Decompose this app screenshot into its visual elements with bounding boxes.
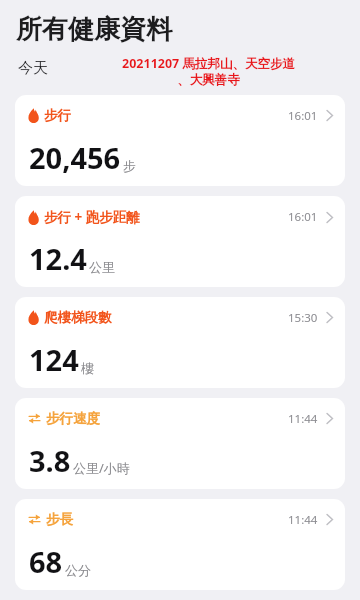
staticText: 今天 (18, 59, 48, 78)
staticText: 20211207 馬拉邦山、天空步道 、大興善寺 (122, 55, 295, 88)
staticText: 16:01 (288, 209, 318, 225)
staticText: 所有健康資料 (16, 13, 172, 46)
button[interactable]: Activity (15, 297, 345, 388)
other: Activity (28, 210, 39, 225)
staticText: 16:01 (288, 108, 318, 124)
button[interactable]: Activity (15, 196, 345, 287)
staticText: 68 (29, 542, 63, 581)
staticText: 11:44 (288, 512, 318, 528)
other: Walking (28, 412, 41, 425)
staticText: 20,456 (29, 138, 121, 177)
other: Open details (326, 109, 333, 122)
button[interactable]: Activity (15, 95, 345, 186)
staticText: 步行 + 跑步距離 (44, 208, 140, 226)
button[interactable]: Walking (15, 398, 345, 489)
other: Walking (28, 513, 41, 526)
staticText: 爬樓梯段數 (44, 309, 112, 326)
staticText: 樓 (81, 360, 94, 376)
staticText: 步 (123, 158, 136, 174)
other: Open details (326, 311, 333, 324)
other: Open details (326, 211, 333, 224)
staticText: 公分 (65, 562, 91, 578)
staticText: 步長 (46, 511, 73, 528)
staticText: 15:30 (288, 310, 318, 326)
staticText: 124 (29, 340, 79, 379)
other: Open details (326, 412, 333, 425)
other: Activity (28, 310, 39, 325)
staticText: 3.8 (29, 441, 71, 480)
button[interactable]: Walking (15, 499, 345, 590)
other: Open details (326, 513, 333, 526)
staticText: 公里/小時 (73, 459, 130, 477)
staticText: 步行 (44, 107, 71, 124)
other: Activity (28, 108, 39, 123)
staticText: 12.4 (29, 239, 87, 278)
staticText: 步行速度 (46, 410, 100, 427)
staticText: 11:44 (288, 411, 318, 427)
staticText: 公里 (89, 259, 115, 275)
